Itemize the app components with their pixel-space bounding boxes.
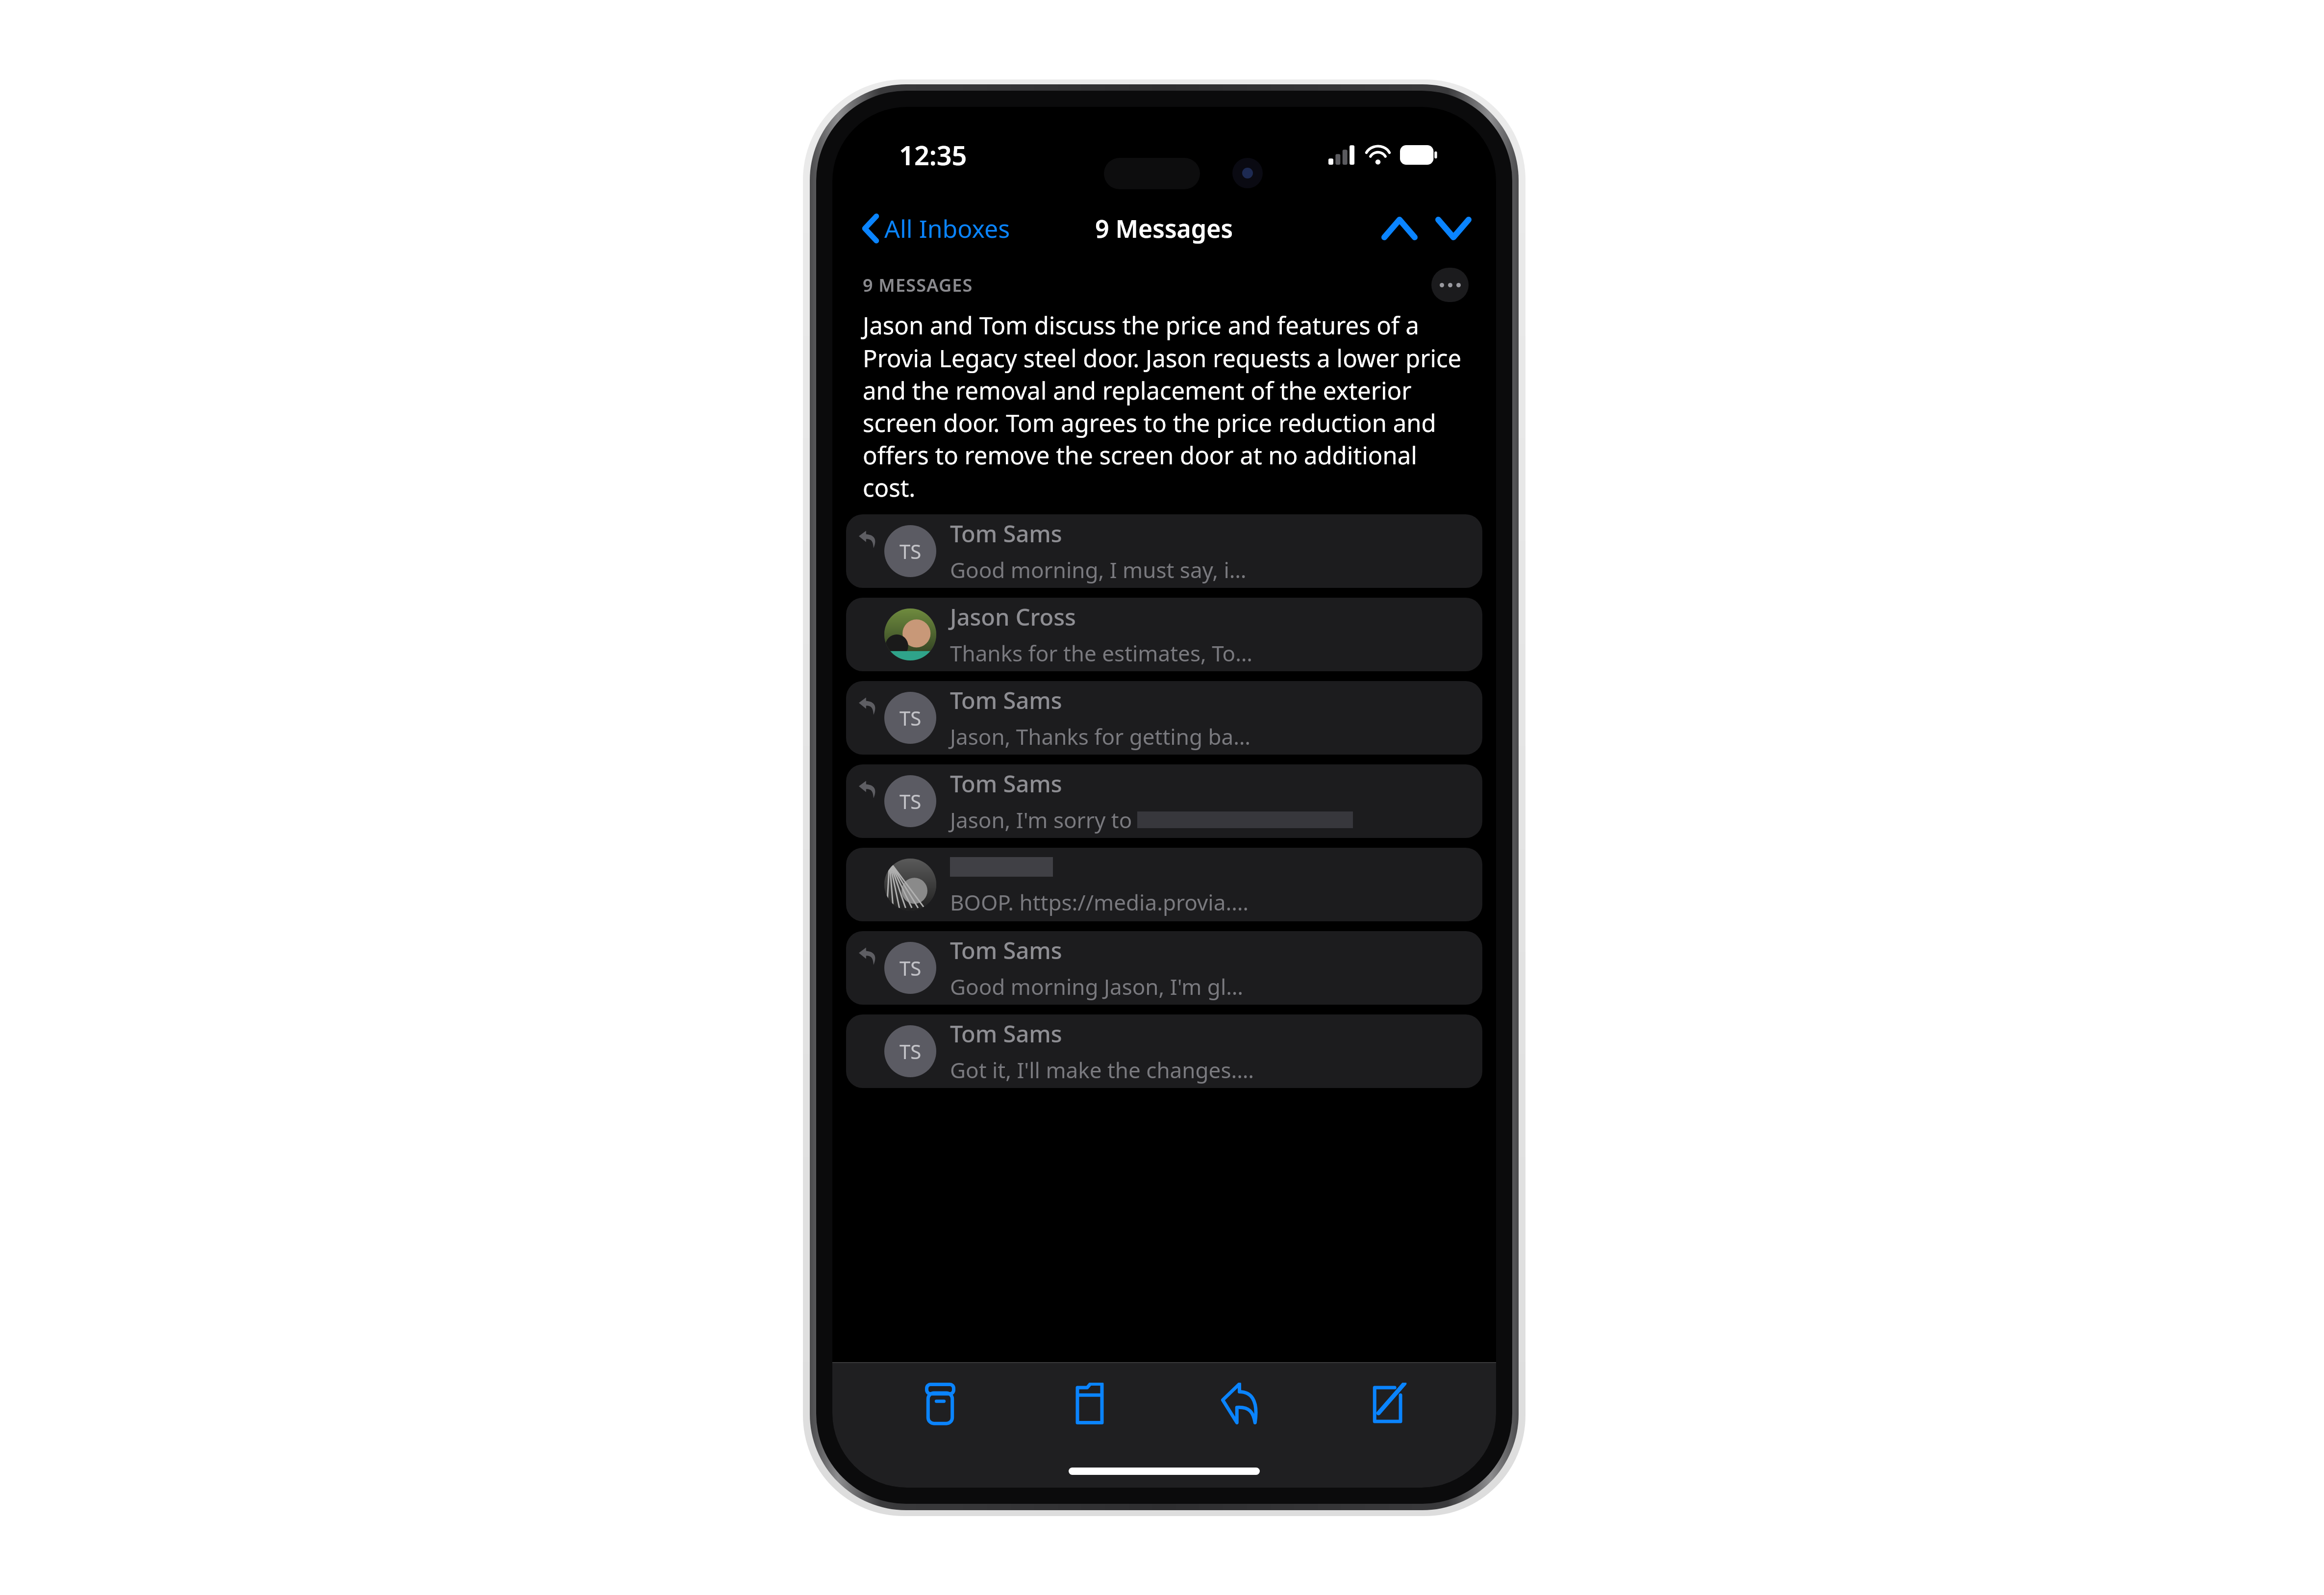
staticText: Tom Sams (950, 518, 1062, 549)
staticText: Tom Sams (950, 1018, 1062, 1049)
button[interactable]: Reply (1197, 1383, 1280, 1451)
button[interactable]: Move to folder (1048, 1383, 1131, 1451)
staticText: TS (900, 1038, 922, 1064)
staticText: Thanks for the estimates, Tom. We've had… (950, 638, 1258, 668)
staticText: Tom Sams (950, 935, 1062, 966)
button[interactable]: 7/12/24 (846, 848, 1482, 921)
staticText: All Inboxes (884, 212, 1010, 245)
staticText: Jason and Tom discuss the price and feat… (863, 309, 1466, 504)
staticText: 9 Messages (1095, 212, 1233, 245)
button[interactable]: Jason Cross (846, 598, 1482, 671)
button[interactable]: All Inboxes (859, 208, 1015, 249)
staticText: Jason, Thanks for getting back to me. I … (950, 722, 1258, 751)
button[interactable]: More options (1431, 268, 1469, 302)
staticText: Good morning, I must say, it was great m… (950, 555, 1249, 584)
staticText: Jason Cross (950, 601, 1076, 633)
staticText: TS (900, 538, 922, 564)
staticText: Tom Sams (950, 768, 1062, 799)
staticText: Good morning Jason, I'm glad to see you … (950, 972, 1249, 1001)
staticText: Tom Sams (950, 684, 1062, 716)
button[interactable]: TS (846, 931, 1482, 1005)
button[interactable]: TS (846, 681, 1482, 755)
button[interactable]: TS (846, 1014, 1482, 1088)
button[interactable]: Next message (1432, 214, 1474, 243)
staticText: TS (900, 705, 922, 731)
staticText: TS (900, 788, 922, 814)
button[interactable]: TS (846, 514, 1482, 588)
button[interactable]: Compose (1347, 1383, 1430, 1451)
staticText: 12:35 (899, 137, 967, 173)
staticText: Jason, I'm sorry to (950, 805, 1132, 835)
staticText: 9 MESSAGES (863, 273, 973, 297)
staticText: TS (900, 955, 922, 981)
staticText: BOOP. https://media.provia.com/temp/ssa5… (950, 887, 1258, 917)
button[interactable]: TS (846, 764, 1482, 838)
button[interactable]: Archive (899, 1383, 982, 1451)
staticText: Got it, I'll make the changes. Thanks, T… (950, 1055, 1258, 1085)
button[interactable]: Previous message (1378, 214, 1421, 243)
